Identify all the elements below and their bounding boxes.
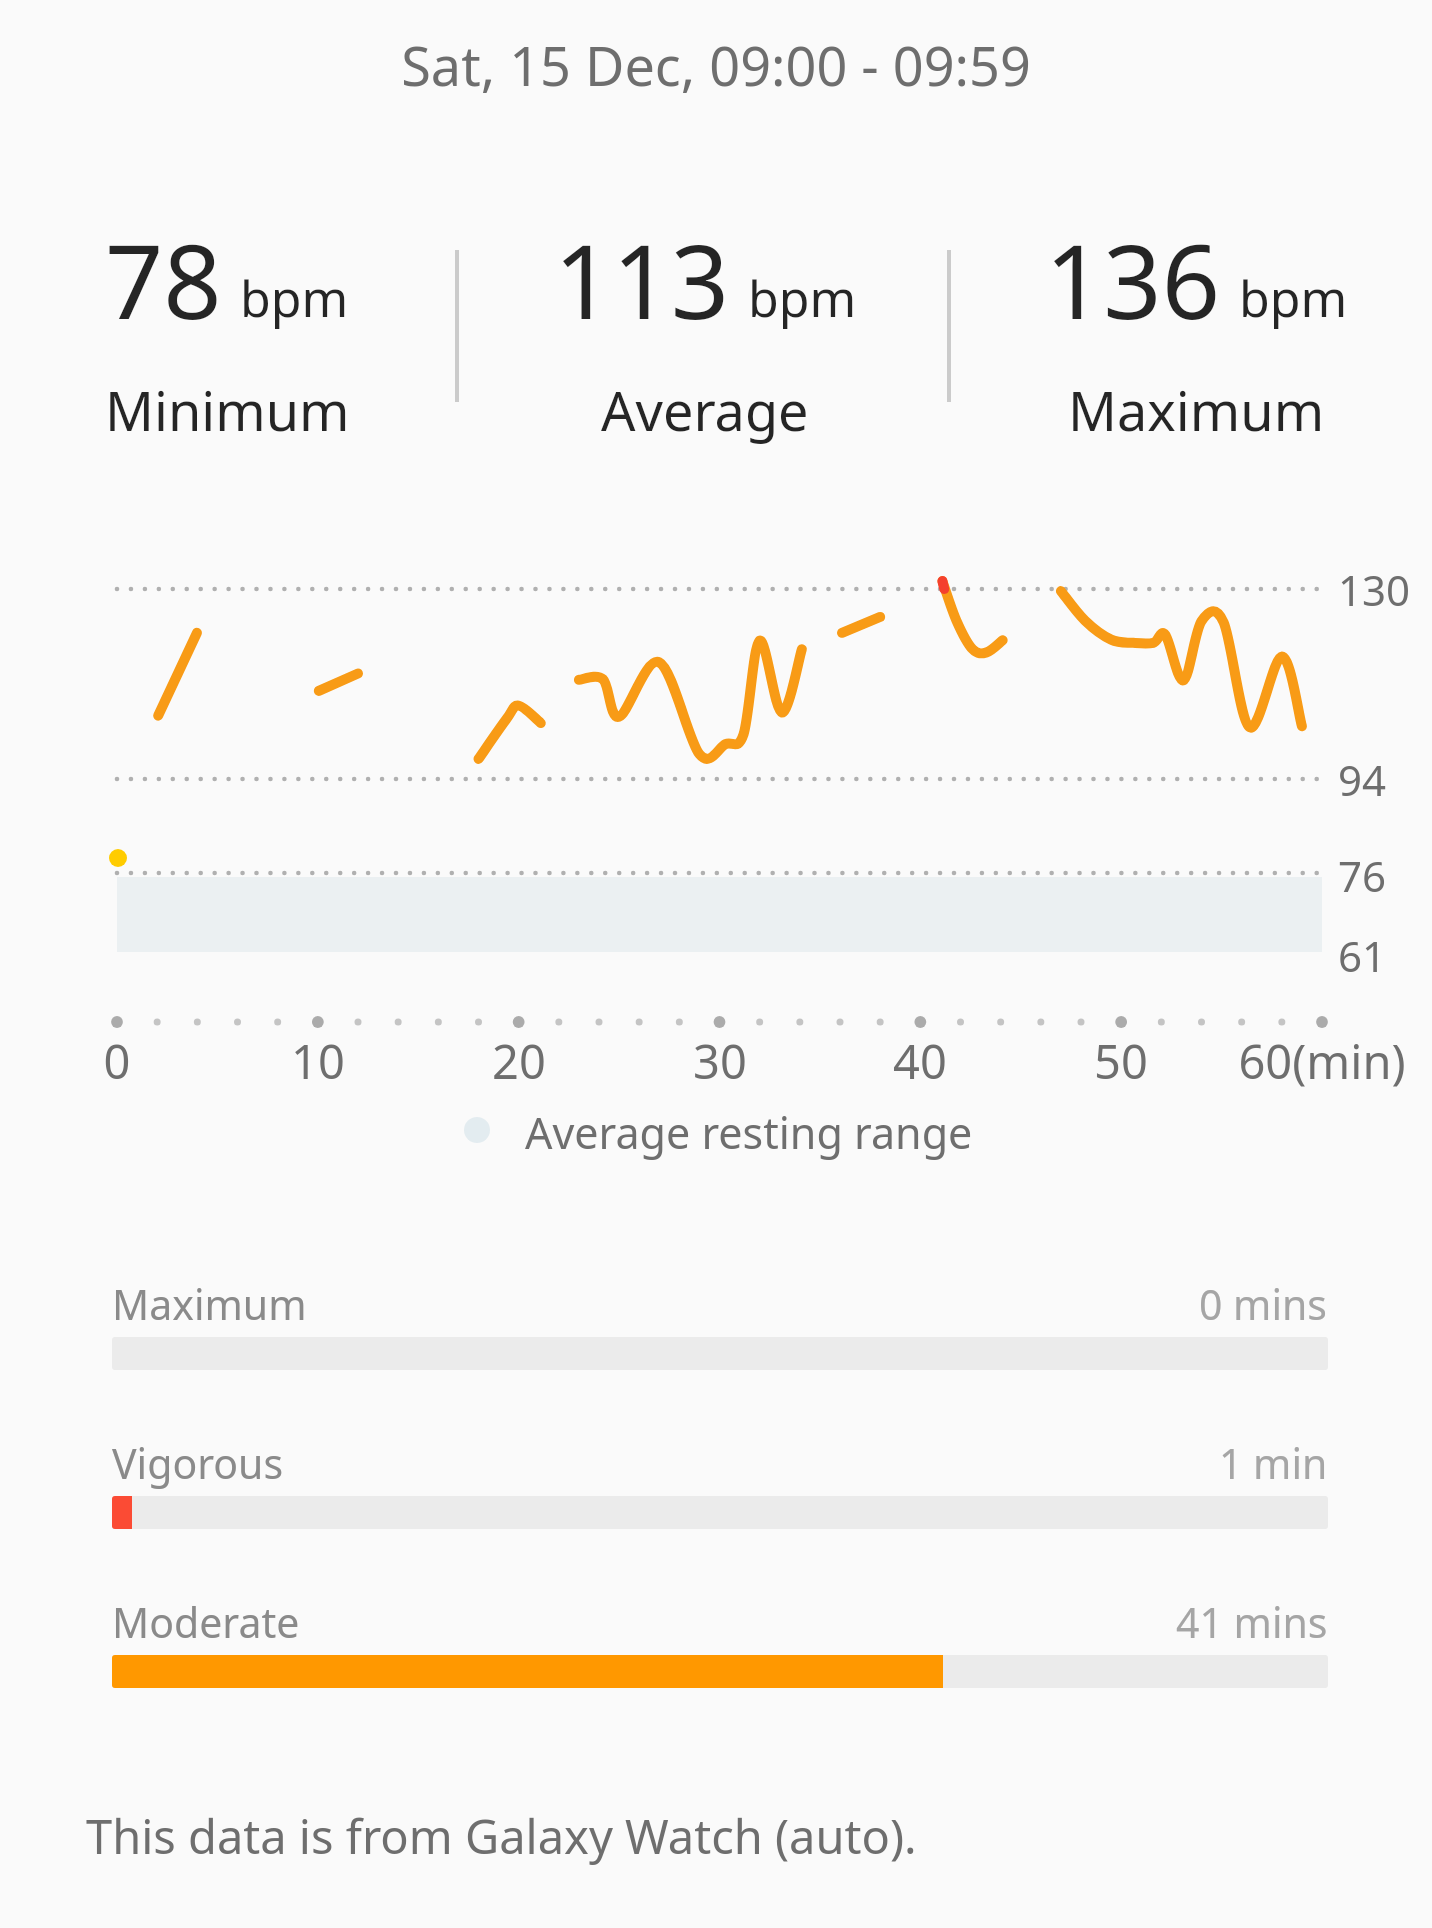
staticText: This data is from Galaxy Watch (auto). <box>86 1804 917 1868</box>
staticText: 61 <box>1338 927 1387 984</box>
staticText: 78 <box>105 210 222 349</box>
staticText: 0 <box>0 1029 267 1093</box>
staticText: Average resting range <box>525 1103 973 1162</box>
staticText: 94 <box>1338 751 1387 808</box>
staticText: bpm <box>1239 264 1348 332</box>
staticText: Moderate <box>112 1594 300 1650</box>
staticText: 1 min <box>1219 1435 1328 1491</box>
button[interactable]: 78 <box>0 210 457 447</box>
staticText: Sat, 15 Dec, 09:00 - 09:59 <box>0 28 1432 102</box>
staticText: Minimum <box>105 373 350 447</box>
staticText: Average <box>601 373 809 447</box>
staticText: 76 <box>1338 847 1387 904</box>
button[interactable]: 136 <box>966 210 1426 447</box>
staticText: 50 <box>971 1029 1271 1093</box>
button[interactable]: Moderate <box>112 1594 1328 1688</box>
staticText: 41 mins <box>1176 1594 1328 1650</box>
staticText: bpm <box>748 264 857 332</box>
button[interactable]: 113 <box>475 210 935 447</box>
staticText: 60(min) <box>1172 1029 1432 1093</box>
staticText: bpm <box>240 264 349 332</box>
button[interactable]: Average resting range <box>455 1096 981 1169</box>
staticText: 113 <box>554 210 730 349</box>
button[interactable]: Maximum <box>112 1276 1328 1370</box>
staticText: 20 <box>369 1029 669 1093</box>
staticText: 30 <box>570 1029 870 1093</box>
staticText: 10 <box>168 1029 468 1093</box>
staticText: 136 <box>1045 210 1221 349</box>
staticText: Maximum <box>112 1276 307 1332</box>
staticText: 0 mins <box>1199 1276 1328 1332</box>
staticText: Vigorous <box>112 1435 284 1491</box>
staticText: Maximum <box>1068 373 1325 447</box>
button[interactable]: Vigorous <box>112 1435 1328 1529</box>
staticText: 40 <box>770 1029 1070 1093</box>
staticText: 130 <box>1338 561 1411 618</box>
